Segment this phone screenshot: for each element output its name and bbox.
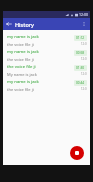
staticText: the voice file ji	[7, 64, 36, 70]
staticText: my name is jack	[7, 79, 39, 85]
staticText: 12:00	[79, 12, 88, 17]
button[interactable]: my name is jack	[3, 33, 90, 48]
staticText: 01:12	[76, 36, 85, 40]
staticText: 12:0	[81, 87, 87, 91]
staticText: my name is jack	[7, 49, 39, 55]
staticText: 00:58	[76, 51, 85, 55]
button[interactable]: Stop recording	[70, 146, 84, 160]
button[interactable]: my name is jack	[3, 78, 90, 93]
staticText: My name is jack	[7, 72, 37, 77]
button[interactable]: my name is jack	[3, 48, 90, 63]
staticText: 12:0	[81, 57, 87, 61]
button[interactable]: Back	[3, 18, 15, 30]
staticText: the voice file ji	[7, 42, 34, 47]
staticText: my name is jack	[7, 34, 39, 40]
staticText: 12:0	[81, 42, 87, 46]
staticText: 01:30	[76, 66, 85, 70]
staticText: the voice file ji	[7, 57, 34, 62]
button[interactable]: More options	[78, 18, 90, 30]
staticText: 12:0	[81, 72, 87, 76]
button[interactable]: the voice file ji	[3, 63, 90, 78]
staticText: 00:44	[76, 81, 85, 85]
staticText: the voice file ji	[7, 87, 34, 92]
staticText: History	[15, 21, 78, 28]
